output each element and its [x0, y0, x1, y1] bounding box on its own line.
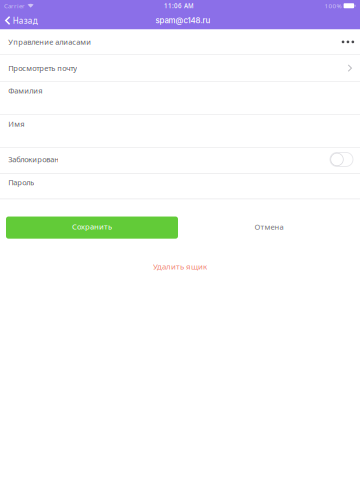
staticText: Заблокирован	[8, 154, 59, 165]
button[interactable]: Отмена	[178, 216, 360, 239]
staticText: Пароль	[8, 177, 34, 187]
button[interactable]: Заблокирован	[0, 148, 360, 173]
staticText: Carrier	[4, 2, 25, 10]
button[interactable]: Пароль	[0, 174, 360, 199]
button[interactable]: Сохранить	[6, 216, 178, 239]
staticText: Отмена	[254, 222, 283, 232]
button[interactable]: Просмотреть почту	[0, 55, 360, 81]
staticText: Назад	[13, 15, 38, 26]
staticText: Просмотреть почту	[8, 63, 77, 73]
staticText: spam@c148.ru	[155, 16, 210, 25]
staticText: 11:06 AM	[164, 2, 194, 10]
staticText: 100%	[324, 2, 341, 10]
button[interactable]: Назад	[0, 13, 42, 28]
button[interactable]: Управление алиасами	[0, 29, 360, 54]
staticText: Имя	[8, 119, 24, 129]
staticText: Управление алиасами	[8, 37, 91, 47]
staticText: Удалить ящик	[153, 261, 207, 272]
staticText: Сохранить	[72, 221, 112, 232]
staticText: Фамилия	[8, 86, 42, 96]
button[interactable]: Удалить ящик	[141, 260, 219, 272]
button[interactable]: Имя	[0, 115, 360, 147]
button[interactable]: Фамилия	[0, 82, 360, 114]
